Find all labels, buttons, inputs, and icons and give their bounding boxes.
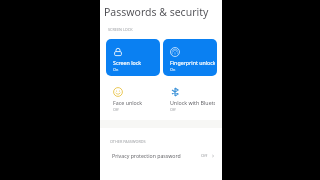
staticText: SCREEN LOCK (108, 27, 133, 32)
button[interactable]: Face unlock (106, 79, 160, 116)
button[interactable]: Unlock with Bluetooth (163, 79, 217, 116)
staticText: Passwords & security (104, 5, 209, 19)
staticText: Off (170, 107, 176, 112)
button[interactable]: Screen lock (106, 39, 160, 76)
staticText: OTHER PASSWORDS (110, 139, 146, 144)
button[interactable]: Privacy protection password (100, 150, 222, 161)
staticText: Face unlock (113, 99, 143, 106)
staticText: Unlock with Bluetooth (170, 99, 215, 106)
button[interactable]: Fingerprint unlock (163, 39, 217, 76)
staticText: On (170, 67, 176, 72)
staticText: Off (201, 153, 208, 159)
staticText: Privacy protection password (112, 152, 181, 159)
staticText: On (113, 67, 119, 72)
staticText: Fingerprint unlock (170, 59, 215, 66)
staticText: Off (113, 107, 119, 112)
staticText: Screen lock (113, 59, 142, 66)
